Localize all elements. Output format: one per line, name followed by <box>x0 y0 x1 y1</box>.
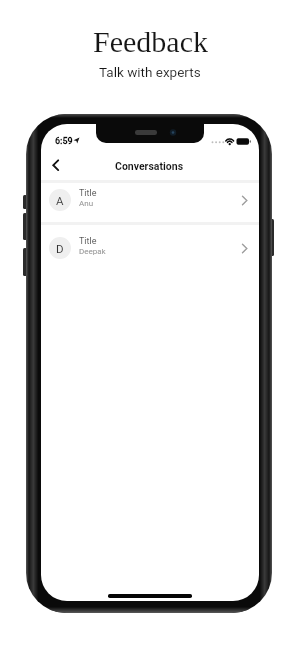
staticText: Title <box>79 188 97 199</box>
staticText: D <box>56 242 64 255</box>
staticText: 6:59 <box>55 136 73 147</box>
staticText: Anu <box>79 199 94 208</box>
staticText: A <box>56 194 64 207</box>
button[interactable] <box>47 154 65 176</box>
button[interactable]: D <box>41 225 259 264</box>
button[interactable]: A <box>41 183 259 222</box>
staticText: Conversations <box>115 160 184 172</box>
staticText: Deepak <box>79 247 106 256</box>
staticText: Title <box>79 236 97 247</box>
staticText: Feedback <box>93 25 208 58</box>
staticText: Talk with experts <box>99 64 201 80</box>
